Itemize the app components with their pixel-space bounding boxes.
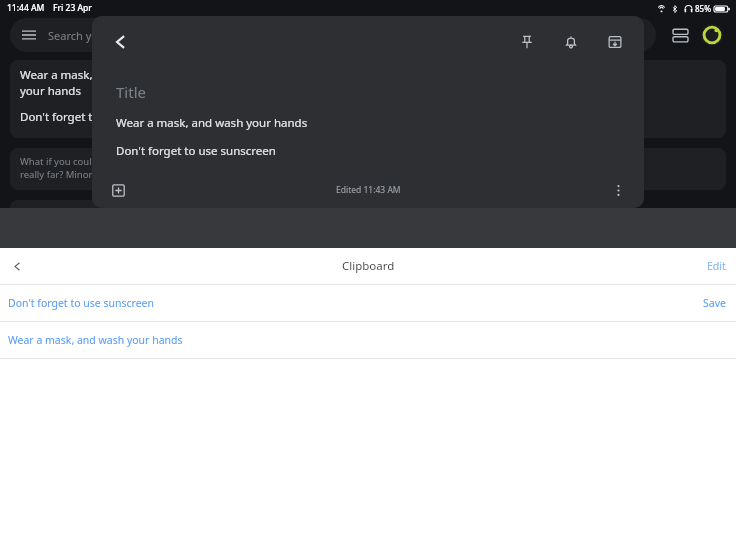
- button[interactable]: Back: [4, 253, 30, 279]
- staticText: What if you could throw really: [20, 155, 153, 168]
- staticText: Wear a mask, and wash your hands: [116, 115, 308, 131]
- button[interactable]: Don't forget to use sunscreen: [0, 285, 736, 321]
- button[interactable]: Archive: [598, 25, 632, 59]
- staticText: Edit: [707, 259, 726, 273]
- staticText: Title: [116, 82, 146, 102]
- button[interactable]: List view: [666, 21, 694, 49]
- button[interactable]: More options: [604, 176, 632, 204]
- staticText: Snowfall: [20, 207, 62, 219]
- button[interactable]: Search your notes: [10, 18, 656, 52]
- button[interactable]: Snowfall: [10, 200, 363, 226]
- button[interactable]: Add: [104, 176, 132, 204]
- button[interactable]: Rain: [373, 60, 726, 138]
- button[interactable]: Edit: [697, 253, 736, 279]
- button[interactable]: What if you could throw really: [10, 148, 363, 190]
- button[interactable]: Wear a mask, and wash: [10, 60, 363, 138]
- staticText: Don't forget to use sunscreen: [20, 109, 180, 125]
- button[interactable]: Back: [104, 25, 138, 59]
- staticText: really far? Minor superpower: [20, 168, 149, 181]
- staticText: Clipboard: [342, 258, 395, 274]
- button[interactable]: Pin note: [510, 25, 544, 59]
- button[interactable]: Save: [693, 288, 736, 318]
- button[interactable]: Ginger, turmeric and: [373, 148, 726, 190]
- staticText: Wear a mask, and wash your hands: [8, 333, 183, 347]
- button[interactable]: Wear a mask, and wash your hands: [0, 322, 736, 358]
- button[interactable]: Reminder: [554, 25, 588, 59]
- staticText: Search your notes: [48, 28, 142, 43]
- staticText: Save: [703, 296, 726, 310]
- staticText: Don't forget to use sunscreen: [116, 143, 276, 159]
- staticText: Edited 11:43 AM: [336, 184, 401, 196]
- staticText: Don't forget to use sunscreen: [8, 296, 154, 310]
- staticText: Wear a mask, and wash: [20, 67, 148, 83]
- staticText: your hands: [20, 83, 81, 99]
- staticText: Fri 23 Apr: [53, 2, 92, 14]
- staticText: 85%: [695, 3, 711, 14]
- staticText: 11:44 AM: [7, 2, 45, 14]
- button[interactable]: Account: [698, 21, 726, 49]
